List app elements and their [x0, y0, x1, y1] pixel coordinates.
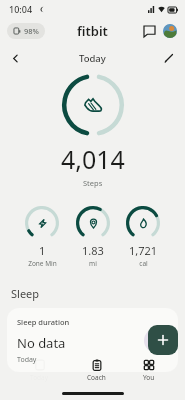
button[interactable]: Coach [79, 357, 114, 384]
staticText: fitbit [77, 22, 108, 40]
staticText: 1,721 [129, 243, 158, 258]
staticText: 98% [24, 26, 39, 36]
button[interactable]: Profile [163, 24, 177, 38]
button[interactable]: Add [148, 325, 178, 355]
staticText: 4,014 [61, 142, 125, 176]
staticText: You [143, 373, 155, 382]
button[interactable]: You [135, 357, 163, 384]
staticText: 1.83 [82, 243, 104, 258]
button[interactable]: 1 [25, 206, 59, 268]
staticText: Coach [87, 373, 106, 382]
staticText: cal [139, 259, 148, 268]
button[interactable]: Messages [142, 24, 156, 38]
button[interactable]: Sleep duration [7, 308, 178, 372]
staticText: Today [79, 52, 106, 65]
button[interactable]: 98% [7, 23, 45, 39]
staticText: Zone Min [28, 259, 57, 268]
staticText: 1 [39, 243, 46, 258]
staticText: Steps [83, 178, 103, 188]
button[interactable]: 1.83 [76, 206, 110, 268]
staticText: mi [89, 259, 97, 268]
button[interactable]: Edit [160, 49, 178, 67]
button[interactable]: 1,721 [126, 206, 160, 268]
staticText: Today [17, 355, 37, 365]
button[interactable]: Back [6, 49, 24, 67]
staticText: Sleep [11, 286, 40, 301]
staticText: Sleep duration [17, 317, 70, 327]
staticText: No data [17, 334, 66, 352]
staticText: 10:04 [9, 3, 33, 15]
button[interactable]: Today [22, 357, 57, 384]
